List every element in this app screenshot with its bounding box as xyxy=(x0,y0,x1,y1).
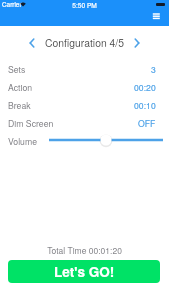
button[interactable]: Dim Screen xyxy=(0,114,169,132)
staticText: Action xyxy=(8,81,33,93)
staticText: Configuration 4/5 xyxy=(0,35,169,50)
staticText: Let's GO! xyxy=(54,262,115,281)
button[interactable]: Volume xyxy=(49,133,163,147)
staticText: OFF xyxy=(138,117,156,129)
button[interactable]: Break xyxy=(0,96,169,114)
staticText: Total Time 00:01:20 xyxy=(0,244,169,256)
button[interactable]: Next configuration xyxy=(129,35,145,51)
staticText: Carrier xyxy=(2,0,22,9)
button[interactable]: Sets xyxy=(0,60,169,78)
staticText: Volume xyxy=(8,135,37,147)
staticText: 3 xyxy=(151,63,156,75)
staticText: 00:10 xyxy=(134,99,156,111)
button[interactable]: Action xyxy=(0,78,169,96)
staticText: Sets xyxy=(8,63,26,75)
staticText: Break xyxy=(8,99,31,111)
staticText: 5:50 PM xyxy=(0,0,169,9)
button[interactable]: Previous configuration xyxy=(24,35,40,51)
button[interactable]: Let's GO! xyxy=(8,260,160,283)
button[interactable]: Menu xyxy=(151,11,163,21)
staticText: Dim Screen xyxy=(8,117,54,129)
staticText: 00:20 xyxy=(134,81,156,93)
